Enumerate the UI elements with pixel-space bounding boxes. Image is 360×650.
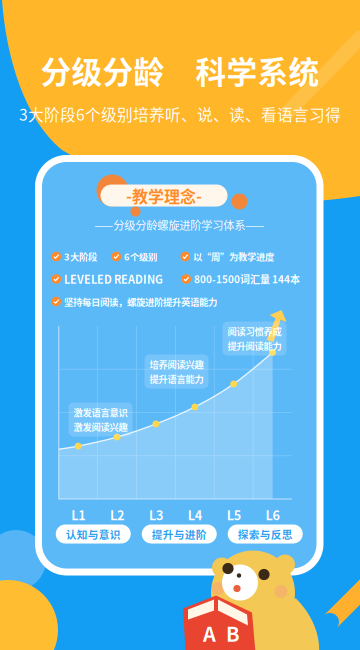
staticText: L3 [149,505,163,524]
staticText: 提升阅读能力 [227,339,281,352]
staticText: 激发语言意识 [73,405,127,419]
staticText: 坚持每日阅读，螺旋进阶提升英语能力 [64,295,217,308]
button[interactable]: 探索与反思 [228,524,303,543]
button[interactable]: 认知与意识 [56,524,131,543]
staticText: 以“周”为教学进度 [193,250,274,263]
staticText: L4 [188,505,202,524]
staticText: L1 [71,505,85,524]
staticText: 探索与反思 [238,526,293,542]
staticText: L5 [227,505,241,524]
staticText: L6 [266,505,280,524]
staticText: A [203,618,216,647]
staticText: B [226,618,240,647]
staticText: 3大阶段6个级别培养听、说、读、看语言习得 [19,102,341,125]
staticText: 800-1500词汇量 144本 [194,272,300,286]
staticText: 3大阶段 [64,250,97,263]
staticText: 提升与进阶 [152,526,207,542]
staticText: ——分级分龄螺旋进阶学习体系—— [94,216,264,233]
button[interactable]: 提升与进阶 [142,524,217,543]
staticText: -教学理念- [126,184,202,207]
staticText: 6个级别 [124,250,157,263]
staticText: 培养阅读兴趣 [149,357,203,371]
staticText: 激发阅读兴趣 [73,420,127,433]
staticText: L2 [110,505,124,524]
staticText: 分级分龄 科学系统 [40,48,319,92]
staticText: 认知与意识 [66,526,121,542]
staticText: 提升语言能力 [149,372,203,385]
staticText: 阅读习惯养成 [227,324,281,338]
staticText: LEVELED READING [64,271,163,287]
